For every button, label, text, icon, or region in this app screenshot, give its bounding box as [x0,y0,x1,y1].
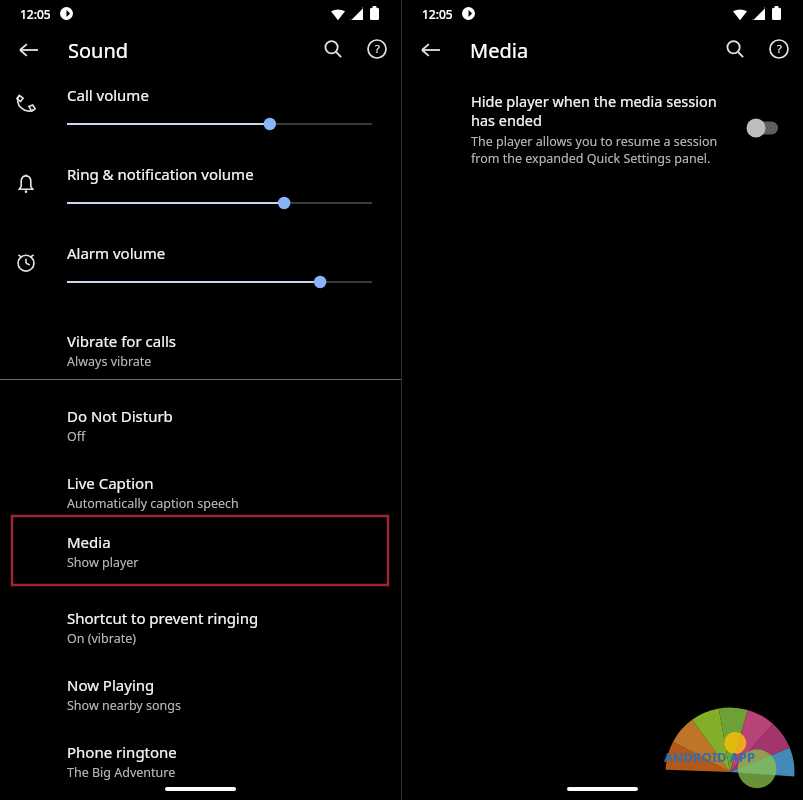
staticText: ? [777,41,782,56]
button[interactable]: Volume slider [60,268,380,296]
staticText: Automatically caption speech [67,495,239,512]
staticText: Vibrate for calls [67,331,177,351]
staticText: ? [375,41,380,56]
button[interactable]: Phone ringtone [0,729,401,785]
button[interactable]: Search [315,31,351,67]
staticText: Show nearby songs [67,697,181,714]
button[interactable]: Hide player toggle [742,108,790,148]
button[interactable]: Volume slider [60,110,380,138]
staticText: Phone ringtone [67,742,177,762]
button[interactable]: Volume slider [60,189,380,217]
button[interactable]: Shortcut to prevent ringing [0,595,401,651]
staticText: Shortcut to prevent ringing [67,608,259,628]
button[interactable]: Back [412,31,450,69]
staticText: Show player [67,554,139,571]
staticText: Do Not Disturb [67,406,173,426]
staticText: Alarm volume [67,243,166,263]
button[interactable]: Back [10,31,48,69]
button[interactable]: Do Not Disturb [0,393,401,449]
staticText: Always vibrate [67,353,152,370]
staticText: Now Playing [67,675,155,695]
staticText: 12:05 [20,6,51,22]
staticText: Off [67,428,86,445]
button[interactable]: Vibrate for calls [0,318,401,374]
staticText: The Big Adventure [67,764,176,781]
button[interactable]: Hide player when the media session has e… [402,86,803,176]
button[interactable]: Help [761,31,797,67]
staticText: Media [470,37,529,64]
button[interactable]: Search [717,31,753,67]
staticText: Live Caption [67,473,154,493]
button[interactable]: Help [359,31,395,67]
staticText: 12:05 [422,6,453,22]
staticText: Media [67,532,111,552]
staticText: On (vibrate) [67,630,136,647]
staticText: Ring & notification volume [67,164,254,184]
staticText: Sound [68,37,129,64]
staticText: Call volume [67,85,149,105]
button[interactable]: Now Playing [0,662,401,718]
staticText: The player allows you to resume a sessio… [471,133,721,166]
staticText: Hide player when the media session has e… [471,91,721,130]
button[interactable]: Media [11,515,389,586]
staticText: ANDROID APP [664,748,755,766]
button[interactable]: Live Caption [0,460,401,516]
